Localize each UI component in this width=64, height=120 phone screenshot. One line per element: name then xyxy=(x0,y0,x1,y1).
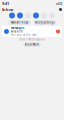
button[interactable]: Filter one xyxy=(9,12,15,18)
button[interactable]: Show More xyxy=(23,42,41,47)
staticText: Notify Settings xyxy=(34,21,54,24)
staticText: Messages xyxy=(11,26,24,30)
button[interactable]: Filter four xyxy=(33,12,39,18)
button[interactable]: Mark All Read xyxy=(8,20,30,25)
button[interactable]: Filter three xyxy=(25,12,31,18)
staticText: Older Notifications xyxy=(19,38,45,41)
button[interactable]: Notify Settings xyxy=(33,20,55,25)
staticText: Mark All Read xyxy=(10,21,28,24)
button[interactable]: Filter five xyxy=(41,12,47,18)
staticText: 9:41 xyxy=(2,1,9,6)
staticText: Alex Kim xyxy=(11,30,22,33)
staticText: Show More xyxy=(24,43,39,46)
staticText: See you at the cafe xyxy=(11,33,37,37)
button[interactable]: Filter six xyxy=(49,12,55,18)
button[interactable]: Account xyxy=(59,8,62,11)
staticText: 3 xyxy=(57,30,59,33)
button[interactable]: Filter two xyxy=(17,12,23,18)
staticText: oOI xyxy=(56,1,62,6)
staticText: Inbox xyxy=(2,7,13,12)
